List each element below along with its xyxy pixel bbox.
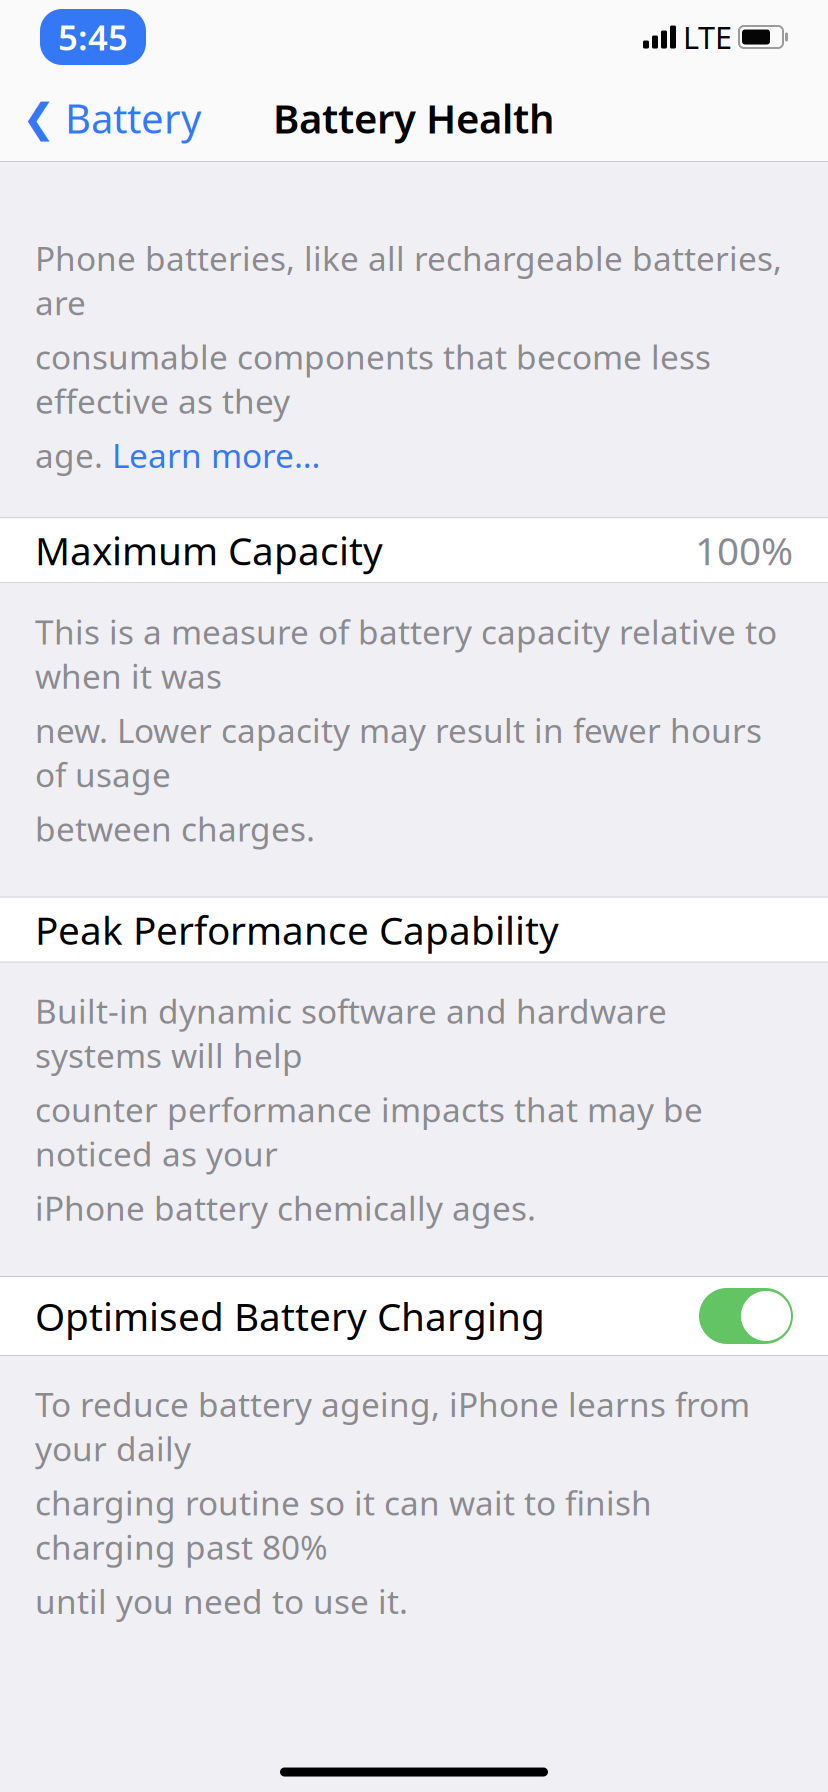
button[interactable]: ❮: [0, 81, 215, 154]
staticText: consumable components that become less e…: [35, 334, 711, 423]
staticText: To reduce battery ageing, iPhone learns …: [35, 1382, 750, 1470]
staticText: counter performance impacts that may be …: [35, 1087, 703, 1176]
staticText: iPhone battery chemically ages.: [35, 1186, 536, 1230]
staticText: LTE: [683, 17, 732, 57]
staticText: new. Lower capacity may result in fewer …: [35, 708, 762, 796]
button[interactable]: Optimised Battery Charging: [0, 1277, 828, 1355]
staticText: charging routine so it can wait to finis…: [35, 1480, 652, 1569]
staticText: ❮: [22, 95, 56, 141]
staticText: 5:45: [58, 14, 128, 60]
button[interactable]: Maximum Capacity: [0, 518, 828, 582]
staticText: Peak Performance Capability: [35, 904, 559, 955]
staticText: Phone batteries, like all rechargeable b…: [35, 236, 782, 324]
staticText: This is a measure of battery capacity re…: [35, 609, 777, 698]
staticText: between charges.: [35, 806, 315, 851]
button[interactable]: Peak Performance Capability: [0, 898, 828, 962]
staticText: Maximum Capacity: [35, 525, 383, 576]
staticText: 100%: [695, 525, 793, 576]
staticText: until you need to use it.: [35, 1579, 408, 1623]
staticText: Optimised Battery Charging: [35, 1290, 545, 1342]
staticText: Battery: [65, 91, 201, 144]
staticText: age.: [35, 433, 112, 477]
staticText: Built-in dynamic software and hardware s…: [35, 989, 667, 1077]
staticText: Learn more…: [112, 433, 320, 477]
staticText: Battery Health: [273, 91, 555, 144]
